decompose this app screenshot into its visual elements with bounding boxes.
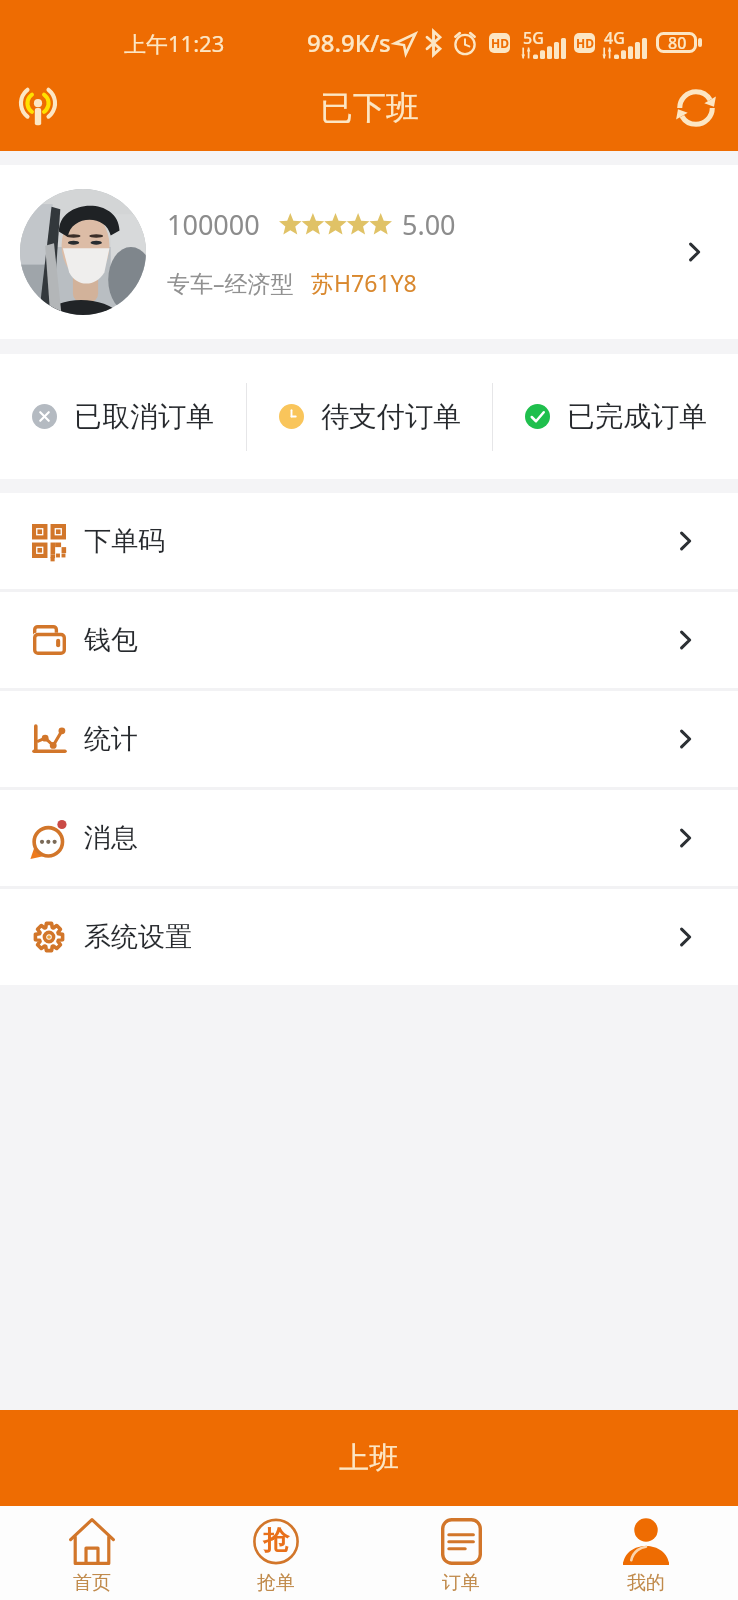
button[interactable]: 首页 — [0, 1506, 184, 1600]
staticText: HD — [491, 35, 509, 51]
button[interactable]: 我的 — [553, 1506, 738, 1600]
button[interactable]: 已取消订单 — [0, 354, 246, 479]
button[interactable]: 已完成订单 — [493, 354, 738, 479]
staticText: 苏H761Y8 — [311, 267, 417, 298]
staticText: 5.00 — [402, 206, 456, 243]
staticText: 待支付订单 — [321, 399, 461, 434]
button[interactable]: 待支付订单 — [247, 354, 492, 479]
staticText: 钱包 — [84, 623, 138, 657]
staticText: 我的 — [627, 1571, 665, 1595]
staticText: 上午11:23 — [124, 28, 225, 58]
staticText: HD — [576, 35, 594, 51]
staticText: 已完成订单 — [567, 399, 707, 434]
staticText: 订单 — [442, 1571, 480, 1595]
staticText: 98.9K/s — [307, 26, 391, 59]
staticText: 80 — [668, 32, 687, 53]
button[interactable]: 系统设置 — [0, 889, 738, 985]
button[interactable]: 上班 — [0, 1410, 738, 1506]
button[interactable]: 100000 — [0, 165, 738, 339]
staticText: 首页 — [73, 1571, 111, 1595]
staticText: 抢单 — [257, 1571, 295, 1595]
button[interactable]: Refresh — [666, 78, 726, 138]
staticText: 100000 — [167, 206, 260, 243]
button[interactable]: 统计 — [0, 691, 738, 787]
button[interactable]: 抢 — [184, 1506, 368, 1600]
staticText: 消息 — [84, 821, 138, 855]
staticText: 统计 — [84, 722, 138, 756]
staticText: 下单码 — [84, 524, 165, 558]
button[interactable]: 订单 — [368, 1506, 553, 1600]
button[interactable]: 下单码 — [0, 493, 738, 589]
staticText: 抢 — [263, 1524, 289, 1557]
staticText: 4G — [604, 27, 625, 49]
button[interactable]: 消息 — [0, 790, 738, 886]
button[interactable]: 钱包 — [0, 592, 738, 688]
staticText: 上班 — [339, 1439, 399, 1477]
staticText: 已取消订单 — [74, 399, 214, 434]
staticText: 5G — [523, 27, 544, 49]
staticText: 系统设置 — [84, 920, 192, 954]
staticText: 已下班 — [320, 87, 419, 129]
staticText: 专车–经济型 — [167, 267, 294, 298]
button[interactable]: Broadcast status — [8, 78, 68, 138]
